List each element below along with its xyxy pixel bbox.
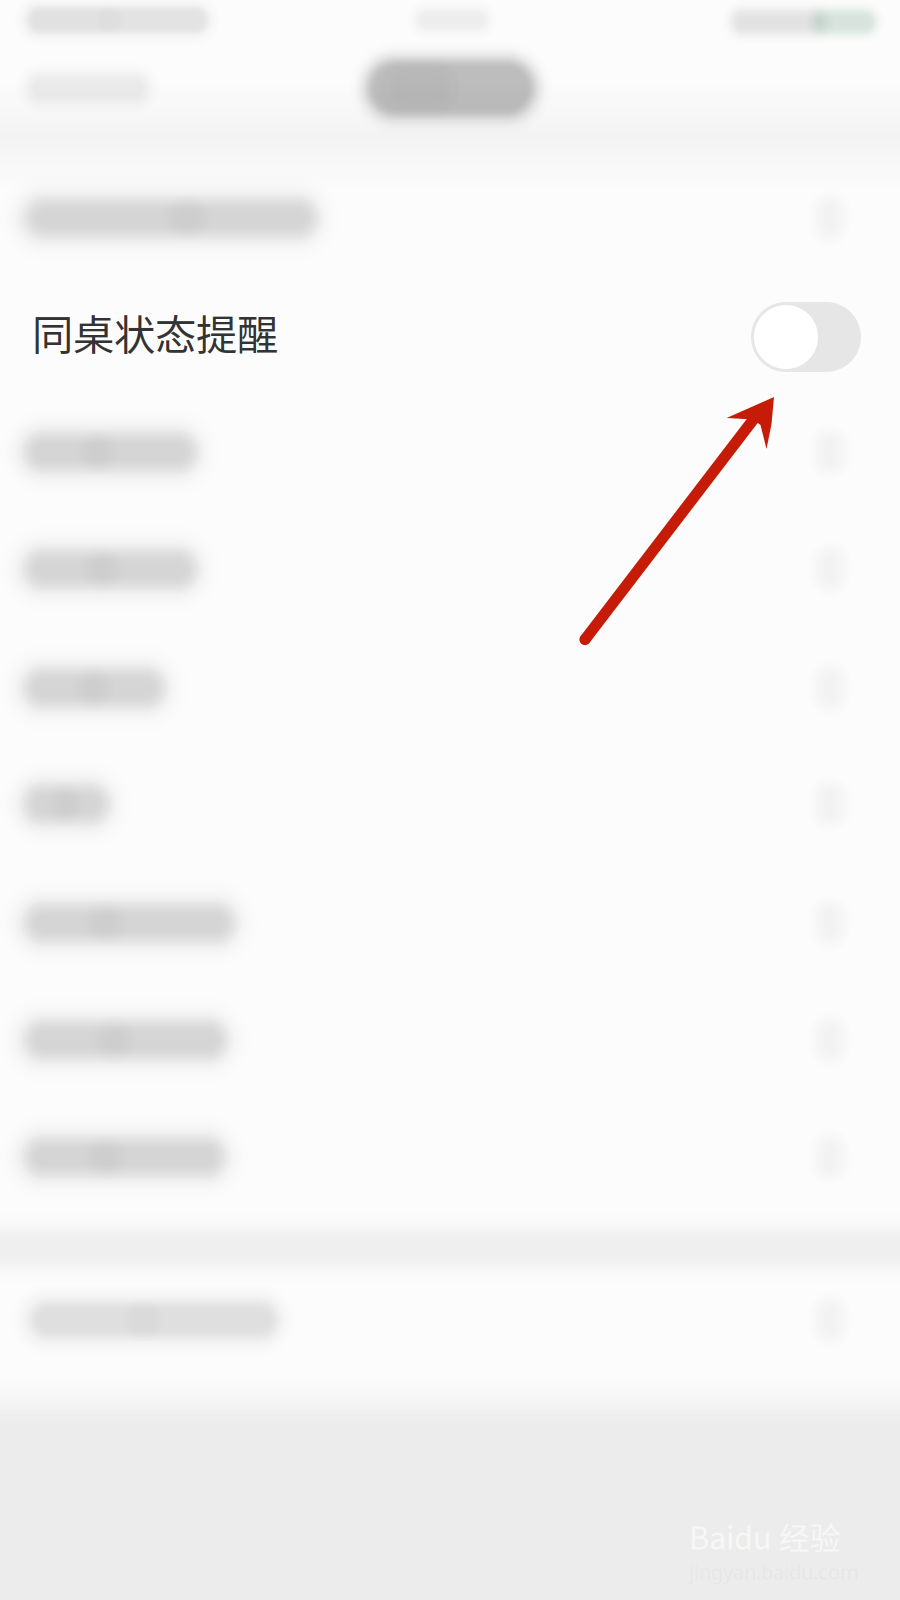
staticText: 同桌状态提醒	[32, 302, 278, 362]
button[interactable]: 同桌状态提醒	[0, 273, 900, 391]
staticText: Baidu 经验	[689, 1514, 841, 1558]
